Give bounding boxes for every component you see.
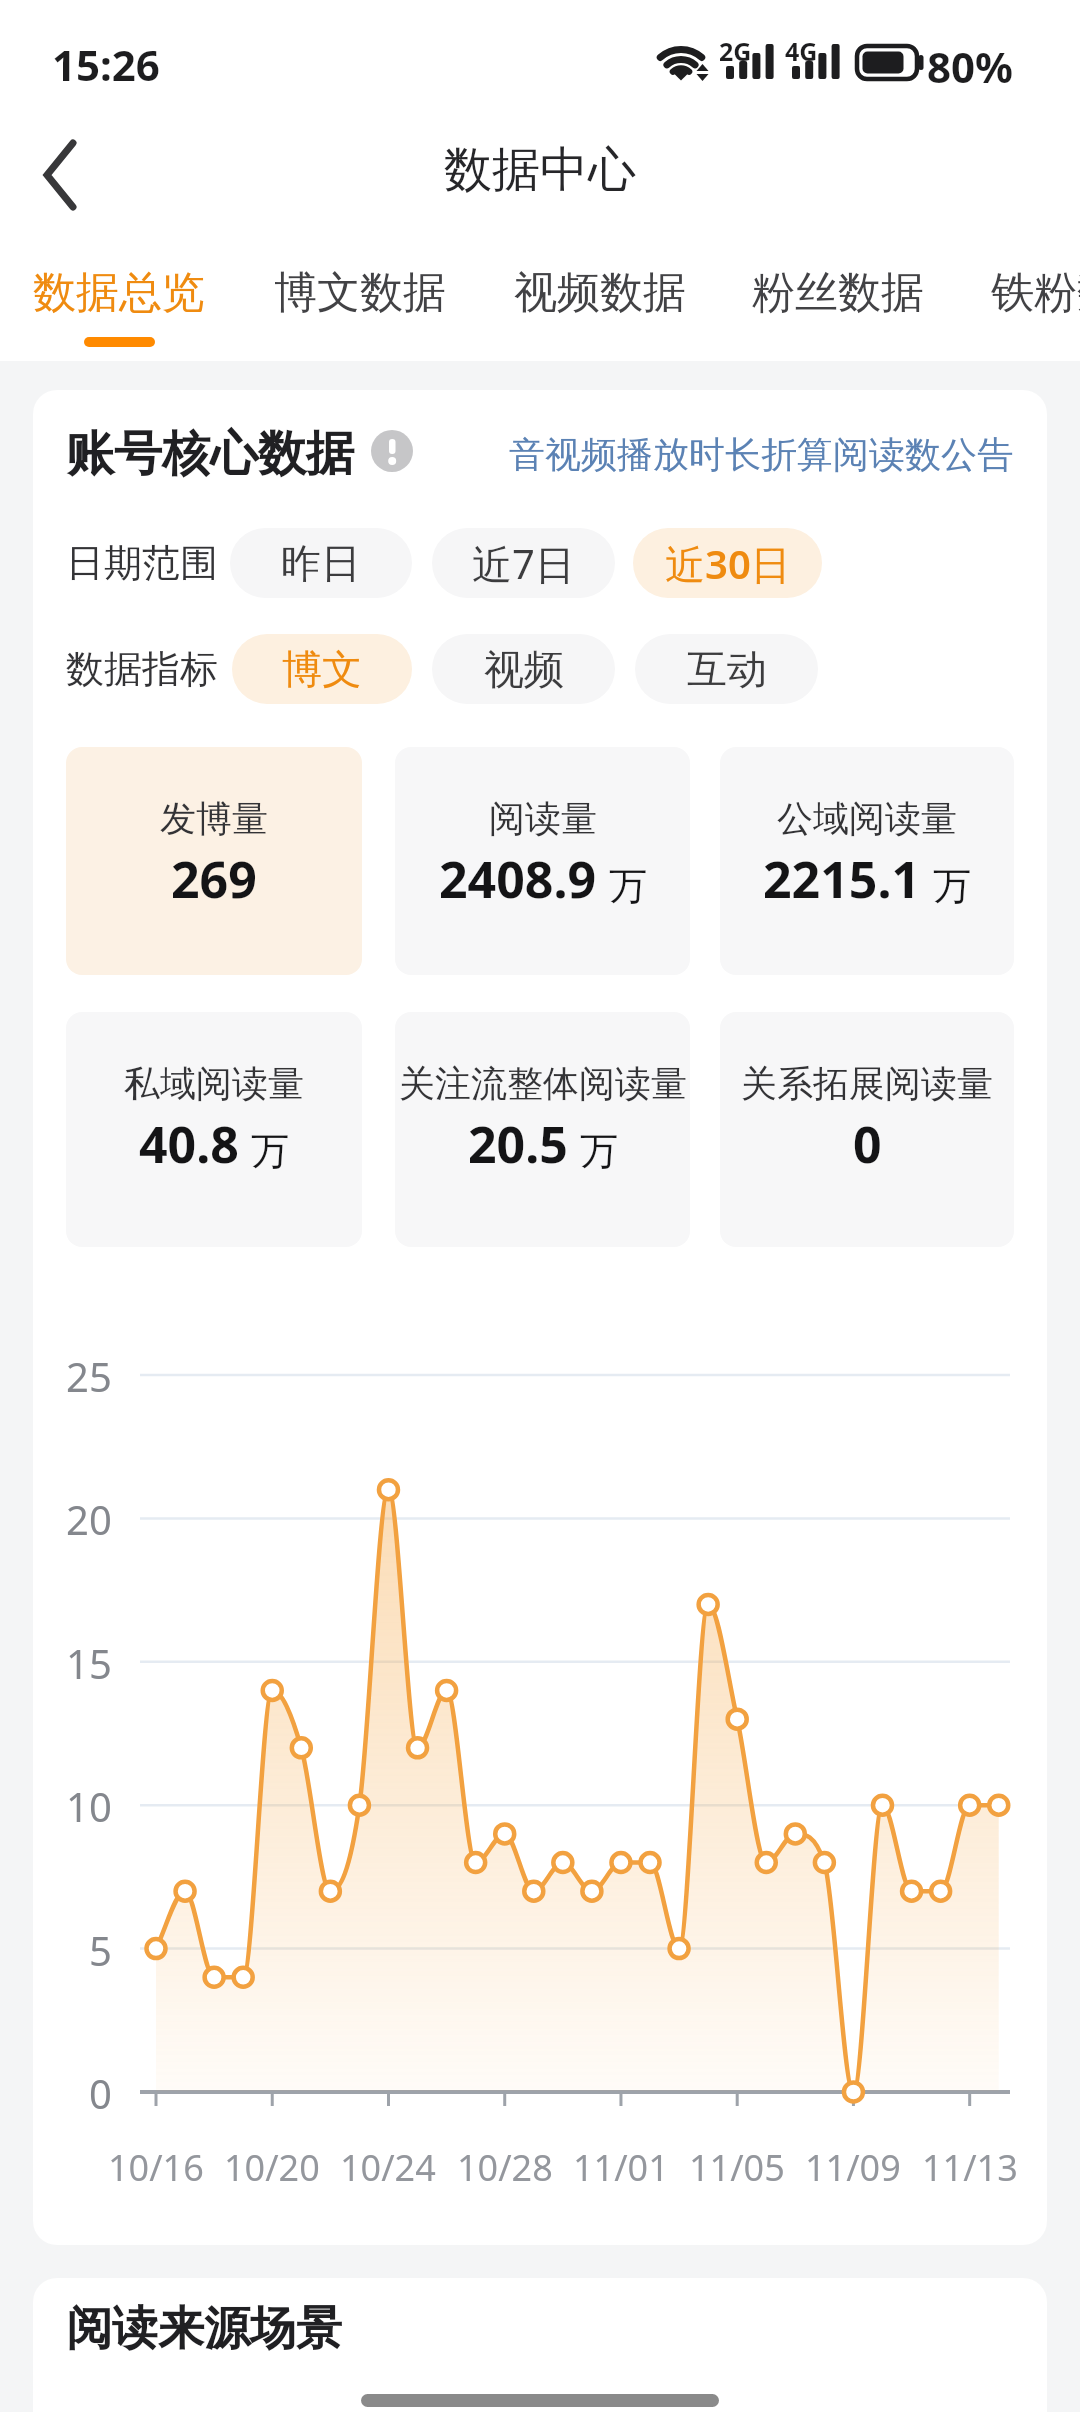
staticText: 日期范围 bbox=[66, 539, 218, 587]
staticText: 昨日 bbox=[281, 538, 361, 588]
staticText: 私域阅读量 bbox=[124, 1061, 304, 1106]
button[interactable]: 阅读量 bbox=[395, 747, 690, 975]
button[interactable]: 关注流整体阅读量 bbox=[395, 1012, 690, 1247]
button[interactable]: 近7日 bbox=[432, 528, 615, 598]
button[interactable]: 昨日 bbox=[230, 528, 412, 598]
staticText: 阅读量 bbox=[489, 796, 597, 841]
staticText: 11/05 bbox=[689, 2143, 785, 2192]
staticText: 万 bbox=[609, 862, 647, 910]
staticText: 5 bbox=[89, 1923, 112, 1975]
staticText: 视频数据 bbox=[514, 266, 686, 320]
staticText: 账号核心数据 bbox=[66, 424, 354, 484]
staticText: 2215.1 bbox=[763, 845, 921, 913]
staticText: 视频 bbox=[484, 644, 564, 694]
staticText: 0 bbox=[853, 1110, 882, 1178]
staticText: 关注流整体阅读量 bbox=[399, 1061, 687, 1106]
staticText: 粉丝数据 bbox=[752, 266, 924, 320]
staticText: 0 bbox=[89, 2066, 112, 2118]
staticText: 2408.9 bbox=[439, 845, 597, 913]
staticText: 269 bbox=[171, 845, 257, 913]
staticText: 万 bbox=[251, 1127, 289, 1175]
staticText: 2G bbox=[719, 34, 752, 68]
staticText: 阅读来源场景 bbox=[66, 2300, 342, 2358]
staticText: 20.5 bbox=[468, 1110, 568, 1178]
button[interactable]: 公域阅读量 bbox=[720, 747, 1014, 975]
button[interactable]: 音视频播放时长折算阅读数公告 bbox=[0, 432, 1013, 477]
staticText: 10/24 bbox=[340, 2143, 436, 2192]
staticText: 万 bbox=[580, 1127, 618, 1175]
button[interactable]: 关系拓展阅读量 bbox=[720, 1012, 1014, 1247]
staticText: 音视频播放时长折算阅读数公告 bbox=[509, 432, 1013, 477]
staticText: 11/01 bbox=[573, 2143, 669, 2192]
button[interactable]: 博文 bbox=[232, 634, 412, 704]
staticText: 10/20 bbox=[224, 2143, 320, 2192]
staticText: 关系拓展阅读量 bbox=[741, 1061, 993, 1106]
button[interactable]: 私域阅读量 bbox=[66, 1012, 362, 1247]
button[interactable]: 粉丝数据 bbox=[752, 266, 924, 320]
staticText: 25 bbox=[66, 1349, 112, 1401]
staticText: 11/13 bbox=[922, 2143, 1018, 2192]
staticText: 数据中心 bbox=[444, 140, 636, 200]
staticText: 数据总览 bbox=[33, 266, 205, 320]
staticText: 40.8 bbox=[139, 1110, 239, 1178]
staticText: 10/16 bbox=[108, 2143, 204, 2192]
button[interactable]: 视频数据 bbox=[514, 266, 686, 320]
staticText: 铁粉数据 bbox=[991, 266, 1080, 320]
button[interactable]: 近30日 bbox=[633, 528, 822, 598]
staticText: 数据指标 bbox=[66, 645, 218, 693]
button[interactable]: 博文数据 bbox=[274, 266, 446, 320]
button[interactable]: 铁粉数据 bbox=[991, 266, 1080, 320]
staticText: 15:26 bbox=[52, 36, 160, 93]
button[interactable]: 视频 bbox=[432, 634, 615, 704]
button[interactable]: 数据总览 bbox=[33, 266, 205, 320]
button[interactable] bbox=[28, 130, 108, 220]
staticText: 发博量 bbox=[160, 796, 268, 841]
staticText: 公域阅读量 bbox=[777, 796, 957, 841]
button[interactable]: 互动 bbox=[635, 634, 818, 704]
staticText: 20 bbox=[66, 1492, 112, 1544]
staticText: 10 bbox=[66, 1779, 112, 1831]
staticText: 近30日 bbox=[665, 536, 791, 591]
button[interactable]: 发博量 bbox=[66, 747, 362, 975]
staticText: 4G bbox=[785, 34, 818, 68]
staticText: 近7日 bbox=[472, 536, 575, 591]
staticText: 博文数据 bbox=[274, 266, 446, 320]
staticText: 15 bbox=[66, 1636, 112, 1688]
staticText: 10/28 bbox=[457, 2143, 553, 2192]
staticText: 万 bbox=[933, 862, 971, 910]
staticText: 80% bbox=[927, 38, 1013, 95]
staticText: 互动 bbox=[687, 644, 767, 694]
staticText: 博文 bbox=[282, 644, 362, 694]
staticText: 11/09 bbox=[805, 2143, 901, 2192]
